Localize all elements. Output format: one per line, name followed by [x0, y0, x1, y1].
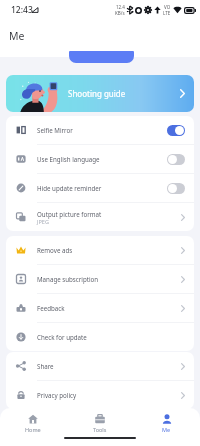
- button[interactable]: Premium: [69, 51, 134, 63]
- staticText: Selfie Mirror: [37, 126, 73, 134]
- staticText: Me: [162, 426, 171, 433]
- button[interactable]: Remove ads: [6, 236, 194, 264]
- staticText: JPEG: [37, 218, 49, 225]
- staticText: Remove ads: [37, 246, 73, 254]
- staticText: Check for update: [37, 333, 87, 341]
- staticText: Tools: [93, 426, 107, 433]
- staticText: Share: [37, 362, 54, 370]
- staticText: KB/s: [115, 10, 125, 16]
- staticText: 12:43: [11, 4, 33, 16]
- staticText: Me: [9, 29, 25, 43]
- staticText: Privacy policy: [37, 391, 77, 399]
- button[interactable]: Toggle: [167, 125, 185, 136]
- staticText: Hide update reminder: [37, 184, 102, 192]
- button[interactable]: Me: [133, 411, 200, 436]
- button[interactable]: Use English language: [6, 145, 194, 173]
- button[interactable]: Share: [6, 352, 194, 380]
- button[interactable]: Toggle: [167, 154, 185, 165]
- button[interactable]: Selfie Mirror: [6, 116, 194, 144]
- staticText: Output picture format: [37, 210, 102, 218]
- button[interactable]: Check for update: [6, 323, 194, 351]
- staticText: Feedback: [37, 304, 65, 312]
- button[interactable]: Hide update reminder: [6, 174, 194, 202]
- staticText: LTE: [163, 10, 171, 16]
- staticText: Use English language: [37, 155, 100, 163]
- button[interactable]: Privacy policy: [6, 381, 194, 409]
- button[interactable]: Shooting guide: [6, 75, 194, 112]
- button[interactable]: Manage subscription: [6, 265, 194, 293]
- staticText: Home: [25, 426, 41, 433]
- staticText: Manage subscription: [37, 275, 99, 283]
- staticText: 12.4: [116, 4, 125, 10]
- staticText: VO: [164, 4, 171, 10]
- staticText: Shooting guide: [68, 88, 126, 99]
- button[interactable]: Output picture format: [6, 203, 194, 231]
- button[interactable]: Tools: [66, 411, 133, 436]
- button[interactable]: Feedback: [6, 294, 194, 322]
- button[interactable]: Toggle: [167, 183, 185, 194]
- button[interactable]: Home: [0, 411, 66, 436]
